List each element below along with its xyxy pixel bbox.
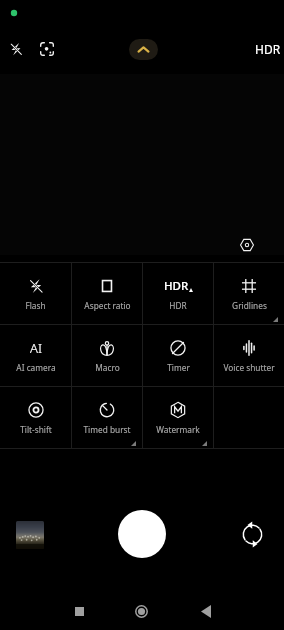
staticText: Watermark	[156, 424, 200, 435]
staticText: Tilt-shift	[20, 424, 52, 435]
button[interactable]: Scan	[35, 37, 59, 61]
button[interactable]: Back	[189, 595, 222, 628]
button[interactable]: Macro	[72, 325, 142, 386]
button[interactable]: Expand settings	[129, 39, 158, 60]
button[interactable]: Home	[125, 595, 158, 628]
staticText: HDR	[255, 41, 281, 57]
button[interactable]: Flash off	[4, 37, 28, 61]
button[interactable]: Gallery	[16, 521, 44, 549]
staticText: Timer	[167, 362, 190, 373]
button[interactable]: HDR	[252, 37, 284, 61]
staticText: Flash	[25, 300, 46, 311]
staticText: AI camera	[16, 362, 56, 373]
staticText: Macro	[95, 362, 120, 373]
staticText: AI	[30, 339, 42, 356]
button[interactable]: HDR	[143, 263, 213, 324]
staticText: Aspect ratio	[84, 300, 131, 311]
staticText: HDR	[169, 300, 187, 311]
button[interactable]: Lens mode	[235, 233, 259, 257]
button[interactable]: AI	[0, 325, 71, 386]
button[interactable]: Aspect ratio	[72, 263, 142, 324]
button[interactable]: Voice shutter	[214, 325, 284, 386]
button[interactable]: Timed burst	[72, 387, 142, 448]
button[interactable]: Recents	[63, 595, 96, 628]
button[interactable]: Shutter	[118, 510, 166, 558]
button[interactable]: Timer	[143, 325, 213, 386]
button[interactable]: Tilt-shift	[0, 387, 71, 448]
staticText: Voice shutter	[223, 362, 275, 373]
button[interactable]: Flash	[0, 263, 71, 324]
button[interactable]: Gridlines	[214, 263, 284, 324]
button[interactable]: Watermark	[143, 387, 213, 448]
staticText: HDR	[164, 278, 189, 294]
staticText: Gridlines	[232, 300, 267, 311]
button[interactable]: Switch camera	[239, 521, 265, 547]
staticText: Timed burst	[83, 424, 131, 435]
